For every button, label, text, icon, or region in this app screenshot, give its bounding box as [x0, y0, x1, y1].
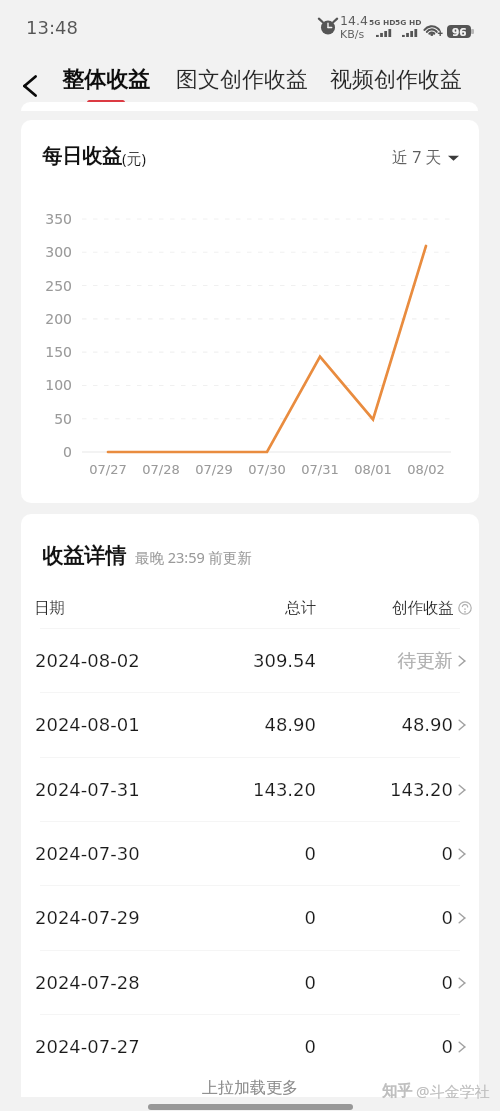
staticText: 0: [30, 444, 72, 460]
button[interactable]: 2024-08-01: [21, 693, 479, 756]
button[interactable]: 图文创作收益: [170, 66, 314, 106]
staticText: 100: [30, 377, 72, 393]
button[interactable]: 整体收益: [50, 66, 162, 106]
staticText: 上拉加载更多: [202, 1078, 298, 1098]
staticText: 2024-08-01: [35, 714, 140, 735]
button[interactable]: 2024-07-31: [21, 758, 479, 821]
staticText: 08/02: [400, 462, 452, 477]
staticText: 0: [221, 972, 316, 993]
staticText: 0: [341, 1036, 453, 1057]
staticText: 08/01: [347, 462, 399, 477]
staticText: 最晚 23:59 前更新: [135, 547, 253, 567]
staticText: 48.90: [341, 714, 453, 735]
staticText: 350: [30, 211, 72, 227]
staticText: 0: [221, 843, 316, 864]
staticText: 200: [30, 311, 72, 327]
button[interactable]: 2024-07-27: [21, 1015, 479, 1078]
staticText: 2024-07-31: [35, 779, 140, 800]
staticText: 2024-07-28: [35, 972, 140, 993]
staticText: 14.4: [340, 13, 368, 28]
staticText: 07/27: [82, 462, 134, 477]
staticText: 知乎: [382, 1082, 412, 1101]
staticText: 收益详情: [42, 543, 126, 569]
button[interactable]: 近 7 天: [392, 146, 459, 168]
button[interactable]: Back: [8, 64, 52, 108]
staticText: 0: [221, 907, 316, 928]
staticText: 2024-07-29: [35, 907, 140, 928]
staticText: 309.54: [221, 650, 316, 671]
staticText: 0: [341, 907, 453, 928]
button[interactable]: 2024-08-02: [21, 629, 479, 692]
staticText: 96: [452, 26, 467, 38]
staticText: 2024-07-27: [35, 1036, 140, 1057]
staticText: 300: [30, 244, 72, 260]
staticText: (元): [122, 148, 147, 168]
staticText: 0: [341, 843, 453, 864]
staticText: @斗金学社: [416, 1081, 490, 1101]
button[interactable]: 视频创作收益: [324, 66, 468, 106]
staticText: 2024-08-02: [35, 650, 140, 671]
staticText: 07/31: [294, 462, 346, 477]
staticText: 13:48: [26, 17, 78, 38]
staticText: 150: [30, 344, 72, 360]
staticText: 250: [30, 278, 72, 294]
staticText: 50: [30, 411, 72, 427]
staticText: 创作收益: [392, 598, 454, 618]
staticText: 143.20: [341, 779, 453, 800]
staticText: 整体收益: [62, 66, 150, 94]
staticText: 待更新: [341, 649, 453, 672]
staticText: 5G HD: [395, 18, 422, 27]
staticText: 图文创作收益: [176, 66, 308, 94]
button[interactable]: 2024-07-30: [21, 822, 479, 885]
staticText: 5G HD: [369, 18, 396, 27]
staticText: 每日收益: [42, 144, 122, 169]
staticText: 0: [341, 972, 453, 993]
button[interactable]: 2024-07-29: [21, 886, 479, 949]
staticText: 48.90: [221, 714, 316, 735]
staticText: 07/29: [188, 462, 240, 477]
staticText: 近 7 天: [392, 146, 442, 168]
staticText: KB/s: [340, 28, 365, 41]
staticText: 2024-07-30: [35, 843, 140, 864]
staticText: 日期: [34, 598, 65, 618]
button[interactable]: 2024-07-28: [21, 951, 479, 1014]
staticText: 07/28: [135, 462, 187, 477]
staticText: 0: [221, 1036, 316, 1057]
staticText: 143.20: [221, 779, 316, 800]
staticText: 07/30: [241, 462, 293, 477]
staticText: 视频创作收益: [330, 66, 462, 94]
staticText: 总计: [221, 598, 316, 618]
